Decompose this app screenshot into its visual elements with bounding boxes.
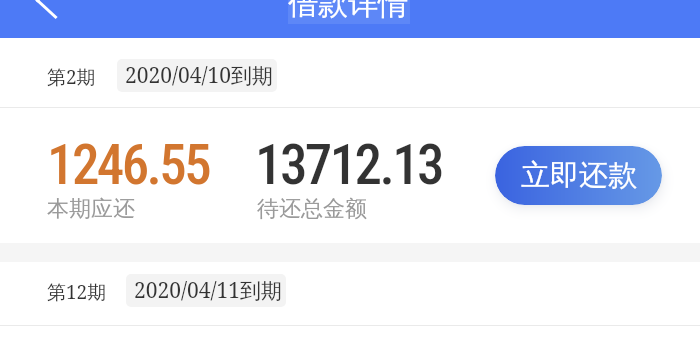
staticText: 待还总金额 (257, 195, 367, 223)
button[interactable]: 第2期 (0, 38, 700, 107)
staticText: 2020/04/10到期 (125, 61, 274, 90)
button[interactable]: 第12期 (0, 262, 700, 325)
button[interactable]: Back (20, 0, 60, 38)
staticText: 第12期 (47, 279, 107, 305)
staticText: 2020/04/11到期 (134, 276, 283, 305)
staticText: 借款详情 (288, 0, 408, 23)
staticText: 第2期 (47, 64, 96, 90)
staticText: 立即还款 (521, 157, 637, 194)
staticText: 13712.13 (255, 133, 443, 197)
staticText: 本期应还 (47, 195, 135, 223)
button[interactable]: 立即还款 (495, 146, 662, 205)
staticText: 1246.55 (47, 133, 210, 197)
